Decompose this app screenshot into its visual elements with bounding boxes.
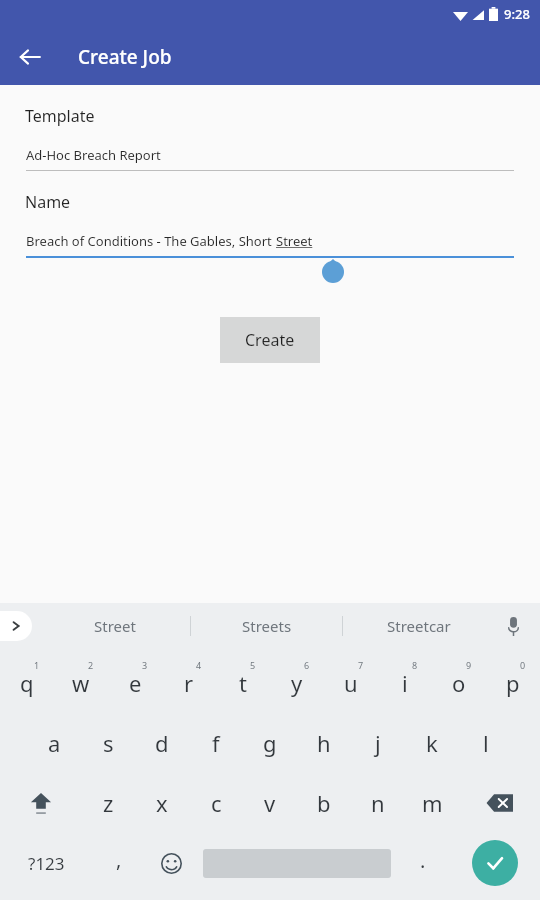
staticText: k — [426, 728, 438, 758]
button[interactable]: u — [324, 653, 378, 713]
button[interactable]: Street — [40, 603, 190, 649]
staticText: r — [184, 668, 194, 698]
staticText: f — [212, 728, 220, 758]
button[interactable]: q — [0, 653, 54, 713]
button[interactable]: z — [81, 773, 135, 833]
staticText: Template — [25, 105, 95, 127]
staticText: Street — [94, 616, 136, 636]
staticText: h — [317, 728, 331, 758]
staticText: p — [506, 668, 520, 698]
button[interactable]: k — [405, 713, 459, 773]
staticText: Ad-Hoc Breach Report — [26, 146, 161, 164]
staticText: i — [402, 668, 408, 698]
button[interactable]: Voice input — [496, 609, 530, 643]
button[interactable]: w — [54, 653, 108, 713]
button[interactable]: i — [378, 653, 432, 713]
button[interactable]: n — [351, 773, 405, 833]
button[interactable]: v — [243, 773, 297, 833]
staticText: 8 — [412, 659, 418, 671]
button[interactable]: Create — [220, 317, 320, 363]
staticText: 3 — [142, 659, 148, 671]
button[interactable]: a — [27, 713, 81, 773]
staticText: ?123 — [28, 852, 65, 875]
button[interactable]: m — [405, 773, 459, 833]
staticText: 4 — [196, 659, 202, 671]
staticText: u — [344, 668, 358, 698]
button[interactable]: Space — [198, 833, 396, 893]
staticText: t — [239, 668, 247, 698]
button[interactable]: . — [396, 833, 449, 893]
button[interactable]: h — [297, 713, 351, 773]
button[interactable]: l — [459, 713, 513, 773]
staticText: Streets — [242, 616, 292, 636]
button[interactable]: c — [189, 773, 243, 833]
staticText: y — [291, 668, 303, 698]
button[interactable]: Shift — [0, 773, 81, 833]
staticText: b — [317, 788, 331, 818]
staticText: Streetcar — [387, 616, 451, 636]
button[interactable]: o — [432, 653, 486, 713]
button[interactable]: r — [162, 653, 216, 713]
staticText: w — [72, 668, 90, 698]
button[interactable]: Backspace — [459, 773, 540, 833]
button[interactable]: Done — [449, 833, 540, 893]
button[interactable]: ?123 — [0, 833, 92, 893]
button[interactable]: Streets — [191, 603, 342, 649]
staticText: g — [263, 728, 277, 758]
staticText: , — [116, 846, 122, 873]
button[interactable]: Breach of Conditions - The Gables, Short — [26, 232, 514, 258]
button[interactable]: Streetcar — [343, 603, 494, 649]
button[interactable]: x — [135, 773, 189, 833]
button[interactable]: , — [92, 833, 145, 893]
staticText: e — [129, 668, 142, 698]
staticText: l — [483, 728, 489, 758]
staticText: c — [211, 788, 222, 818]
staticText: . — [420, 847, 426, 874]
staticText: 1 — [34, 659, 40, 671]
staticText: d — [155, 728, 169, 758]
staticText: Name — [25, 191, 71, 213]
button[interactable]: j — [351, 713, 405, 773]
staticText: q — [20, 668, 34, 698]
staticText: x — [156, 788, 168, 818]
staticText: j — [375, 728, 381, 758]
button[interactable]: d — [135, 713, 189, 773]
staticText: Breach of Conditions - The Gables, Short — [26, 232, 276, 250]
staticText: Create — [245, 329, 295, 351]
staticText: s — [103, 728, 114, 758]
staticText: a — [48, 728, 61, 758]
staticText: 7 — [358, 659, 364, 671]
staticText: 0 — [520, 659, 526, 671]
staticText: 5 — [250, 659, 256, 671]
staticText: 9 — [466, 659, 472, 671]
button[interactable]: Expand suggestions — [0, 611, 32, 641]
staticText: o — [452, 668, 466, 698]
staticText: z — [103, 788, 114, 818]
staticText: 2 — [88, 659, 94, 671]
staticText: 6 — [304, 659, 310, 671]
button[interactable]: Ad-Hoc Breach Report — [26, 146, 514, 171]
staticText: Create Job — [78, 44, 172, 70]
staticText: 9:28 — [504, 5, 530, 23]
staticText: n — [371, 788, 385, 818]
staticText: m — [422, 788, 443, 818]
button[interactable]: Back — [8, 35, 52, 79]
button[interactable]: f — [189, 713, 243, 773]
button[interactable]: t — [216, 653, 270, 713]
button[interactable]: s — [81, 713, 135, 773]
button[interactable]: b — [297, 773, 351, 833]
staticText: Street — [276, 232, 313, 250]
button[interactable]: y — [270, 653, 324, 713]
button[interactable]: e — [108, 653, 162, 713]
button[interactable]: p — [486, 653, 540, 713]
staticText: v — [264, 788, 276, 818]
button[interactable]: g — [243, 713, 297, 773]
button[interactable]: Emoji — [145, 833, 198, 893]
